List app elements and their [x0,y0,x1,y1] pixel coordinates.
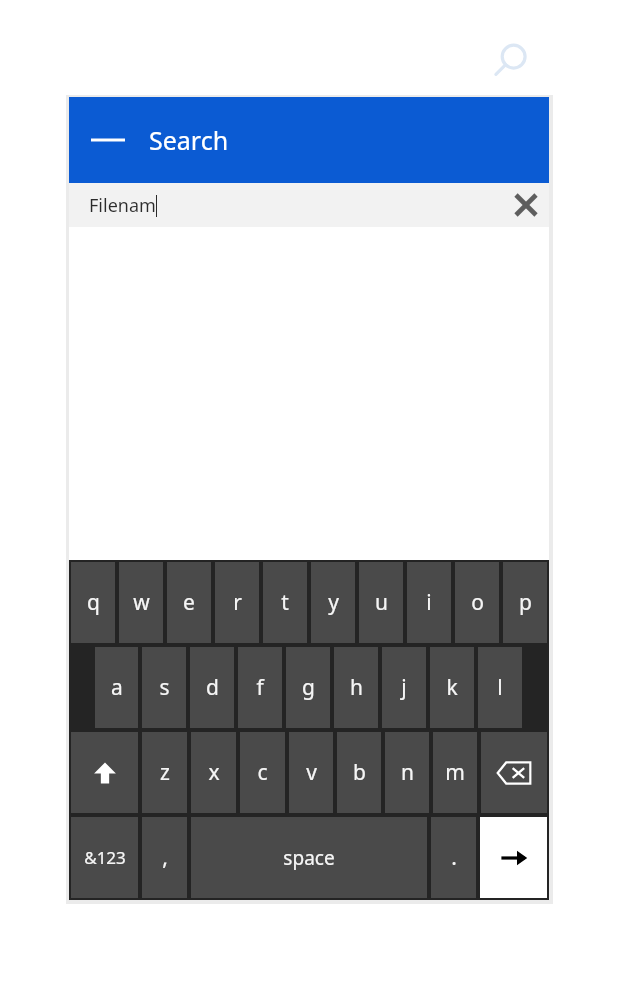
button[interactable]: , [142,817,187,898]
staticText: w [133,588,150,617]
staticText: p [519,588,532,617]
button[interactable]: . [431,817,476,898]
button[interactable]: Filenam [69,183,549,227]
button[interactable]: s [142,647,186,728]
staticText: space [283,845,335,871]
staticText: o [471,588,484,617]
staticText: e [183,588,195,617]
button[interactable]: h [334,647,378,728]
staticText: h [350,673,363,702]
staticText: f [256,673,264,702]
staticText: q [87,588,100,617]
button[interactable]: m [433,732,477,813]
staticText: b [353,758,366,787]
button[interactable]: r [215,562,259,643]
staticText: y [328,588,339,617]
staticText: j [401,673,407,702]
staticText: u [375,588,388,617]
button[interactable]: i [407,562,451,643]
button[interactable]: q [71,562,115,643]
button[interactable]: d [190,647,234,728]
button[interactable]: c [240,732,285,813]
staticText: s [159,673,170,702]
staticText: , [162,843,168,872]
staticText: r [233,588,242,617]
button[interactable]: space [191,817,427,898]
button[interactable]: Menu [69,97,549,183]
staticText: d [206,673,219,702]
button[interactable]: y [311,562,355,643]
button[interactable]: j [382,647,426,728]
staticText: a [111,673,123,702]
staticText: Search [149,123,229,157]
button[interactable]: Backspace [481,732,547,813]
button[interactable]: l [478,647,522,728]
staticText: g [302,673,315,702]
button[interactable]: Enter [480,817,547,898]
button[interactable]: z [142,732,187,813]
staticText: c [257,758,268,787]
button[interactable]: Menu [91,129,125,151]
button[interactable]: Shift [71,732,138,813]
button[interactable]: g [286,647,330,728]
button[interactable]: Search [489,39,533,83]
button[interactable]: a [95,647,138,728]
staticText: l [497,673,503,702]
button[interactable]: n [385,732,429,813]
staticText: x [208,758,220,787]
button[interactable]: t [263,562,307,643]
staticText: i [426,588,432,617]
staticText: v [306,758,317,787]
button[interactable]: e [167,562,211,643]
staticText: t [281,588,289,617]
button[interactable]: x [191,732,236,813]
staticText: m [445,758,465,787]
staticText: k [446,673,458,702]
button[interactable]: k [430,647,474,728]
staticText: . [451,843,457,872]
button[interactable]: Clear [503,183,549,227]
button[interactable]: v [289,732,333,813]
button[interactable]: u [359,562,403,643]
button[interactable]: o [455,562,499,643]
button[interactable]: p [503,562,547,643]
staticText: &123 [84,846,126,869]
button[interactable]: f [238,647,282,728]
button[interactable]: b [337,732,381,813]
button[interactable]: w [119,562,163,643]
staticText: Filenam [89,193,156,218]
staticText: z [160,758,170,787]
button[interactable]: &123 [71,817,138,898]
staticText: n [401,758,414,787]
